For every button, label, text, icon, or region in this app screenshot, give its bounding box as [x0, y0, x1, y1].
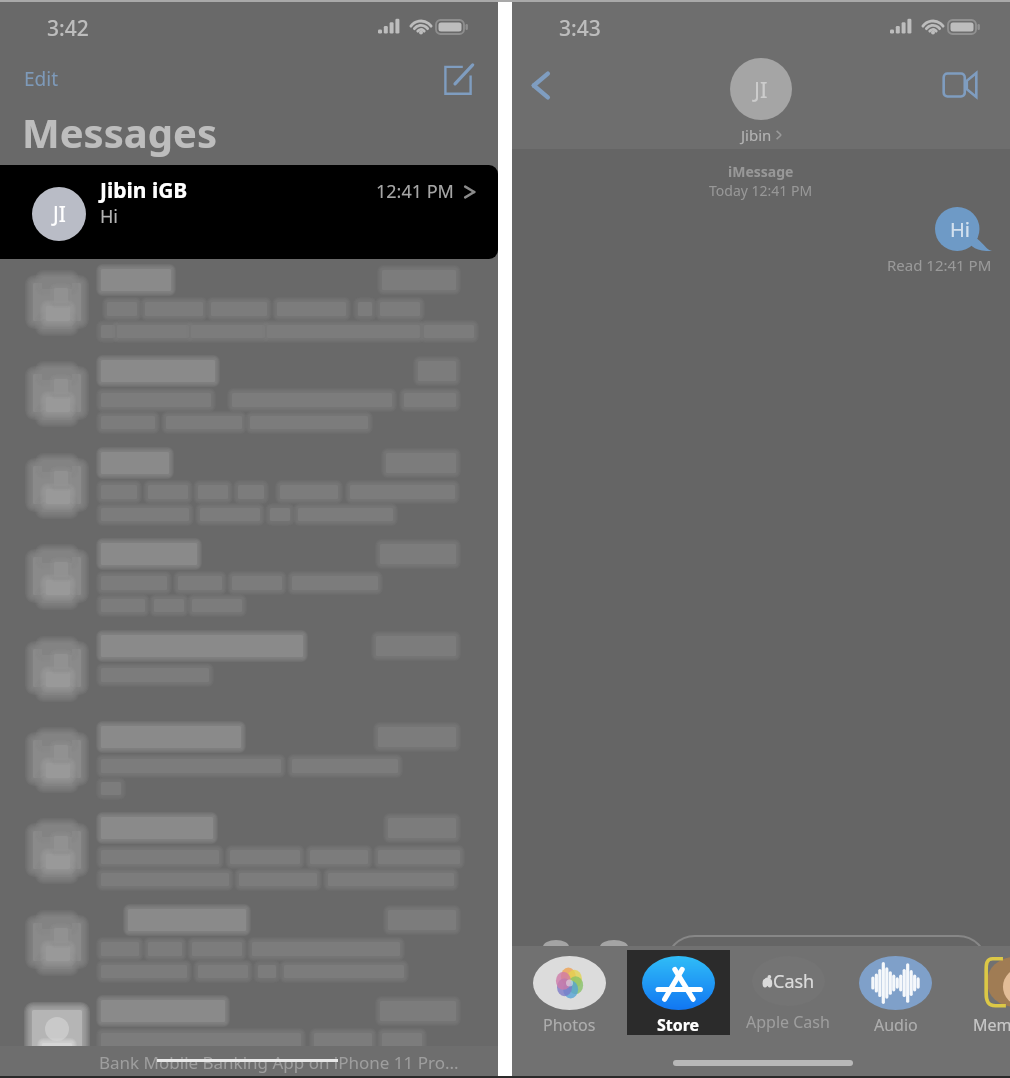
button[interactable]: Photos [518, 956, 621, 1036]
button[interactable]: FaceTime [933, 60, 987, 110]
staticText: Read 12:41 PM [887, 255, 992, 275]
staticText: Hi [100, 204, 118, 229]
button[interactable]: Back [515, 60, 565, 110]
staticText: JI [53, 200, 66, 229]
staticText: Bank Mobile Banking App on iPhone 11 Pro… [99, 1051, 459, 1074]
button[interactable]: JI [0, 165, 498, 259]
staticText: Audio [874, 1014, 918, 1036]
button[interactable]: JI [697, 58, 825, 145]
staticText: Apple Cash [746, 1011, 830, 1033]
staticText: Today 12:41 PM [709, 181, 813, 200]
staticText: Edit [24, 66, 59, 92]
staticText: 3:42 [47, 14, 89, 43]
staticText: Jibin [741, 125, 772, 145]
staticText: Jibin iGB [100, 176, 188, 205]
button[interactable]: Audio [844, 956, 947, 1036]
button[interactable]: Edit [10, 58, 73, 100]
staticText: 12:41 PM [376, 179, 454, 204]
staticText: iMessage [728, 162, 794, 181]
staticText: 3:43 [559, 14, 601, 43]
button[interactable]: Memoji [950, 956, 1010, 1036]
staticText: Memoji [973, 1014, 1010, 1036]
staticText: Cash [773, 969, 815, 994]
button[interactable]: Compose message [436, 56, 480, 104]
staticText: Photos [543, 1014, 596, 1036]
staticText: Hi [950, 216, 970, 243]
staticText: Messages [22, 105, 217, 159]
button[interactable]: Store [627, 950, 730, 1035]
button[interactable]: Cash [736, 956, 839, 1033]
staticText: JI [754, 74, 768, 104]
staticText: Store [657, 1014, 700, 1035]
